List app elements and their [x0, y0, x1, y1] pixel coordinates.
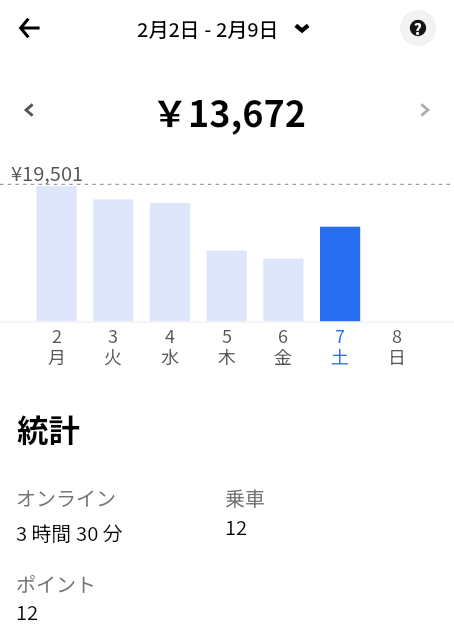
- button[interactable]: 5日 木曜日: [199, 172, 255, 370]
- staticText: 2月2日 - 2月9日: [137, 14, 279, 43]
- button[interactable]: オンライン: [16, 483, 206, 549]
- staticText: 乗車: [225, 483, 265, 512]
- button[interactable]: 8日 日曜日: [369, 172, 425, 370]
- staticText: オンライン: [16, 483, 116, 512]
- staticText: 5: [199, 322, 255, 348]
- staticText: 12: [225, 512, 248, 541]
- button[interactable]: Previous week: [5, 86, 53, 134]
- button[interactable]: 乗車: [225, 483, 415, 549]
- staticText: 木: [199, 343, 255, 369]
- staticText: ポイント: [16, 569, 96, 598]
- staticText: 火: [85, 343, 141, 369]
- staticText: 4: [142, 322, 198, 348]
- button[interactable]: 4日 水曜日: [142, 172, 198, 370]
- staticText: 月: [29, 343, 85, 369]
- button[interactable]: 7日 土曜日: [312, 172, 368, 370]
- staticText: 統計: [17, 405, 81, 451]
- button[interactable]: 3日 火曜日: [85, 172, 141, 370]
- staticText: ?: [414, 18, 422, 40]
- button[interactable]: 2日 月曜日: [29, 172, 85, 370]
- staticText: 7: [312, 322, 368, 348]
- staticText: 土: [312, 343, 368, 369]
- staticText: 3 時間 30 分: [16, 518, 123, 547]
- button[interactable]: Next week: [401, 86, 449, 134]
- staticText: 6: [255, 322, 311, 348]
- staticText: 8: [369, 322, 425, 348]
- button[interactable]: ポイント: [16, 569, 206, 635]
- button[interactable]: Help: [400, 10, 436, 46]
- button[interactable]: Back: [1, 0, 57, 56]
- staticText: 12: [16, 597, 39, 626]
- button[interactable]: 6日 金曜日: [255, 172, 311, 370]
- button[interactable]: 2月2日 - 2月9日: [137, 9, 310, 47]
- staticText: 金: [255, 343, 311, 369]
- staticText: 2: [29, 322, 85, 348]
- staticText: ¥19,501: [11, 158, 84, 187]
- staticText: 水: [142, 343, 198, 369]
- staticText: ￥13,672: [152, 85, 306, 137]
- staticText: 3: [85, 322, 141, 348]
- staticText: 日: [369, 343, 425, 369]
